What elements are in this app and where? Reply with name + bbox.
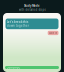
- staticText: down together: [7, 24, 29, 27]
- staticText: with detailed steps: [18, 8, 45, 11]
- staticText: Got it: [49, 31, 57, 35]
- staticText: Study Mode: [24, 4, 40, 7]
- button[interactable]: Continue: [5, 66, 59, 69]
- staticText: Continue: [6, 66, 20, 69]
- staticText: Let's break this: [7, 20, 28, 24]
